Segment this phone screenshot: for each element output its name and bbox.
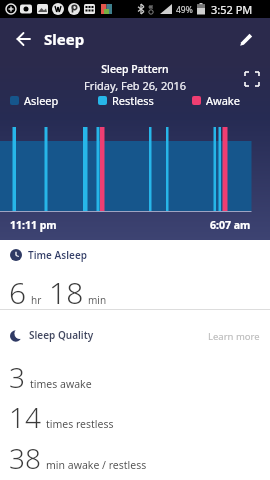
staticText: Restless — [112, 93, 154, 108]
staticText: times awake — [30, 377, 92, 391]
staticText: 18 — [49, 272, 84, 313]
staticText: 3:52 PM — [211, 2, 253, 17]
staticText: Awake — [206, 93, 240, 108]
staticText: Asleep — [24, 93, 59, 108]
staticText: Sleep Pattern — [0, 62, 270, 76]
staticText: 14 — [9, 398, 41, 436]
staticText: Sleep — [44, 29, 85, 49]
button[interactable]: Learn more — [208, 330, 260, 343]
staticText: 6:07 am — [210, 218, 251, 232]
staticText: 11:11 pm — [10, 218, 57, 232]
staticText: Sleep Quality — [29, 328, 94, 342]
staticText: times restless — [46, 417, 114, 431]
staticText: hr — [31, 293, 42, 307]
staticText: 49% — [176, 4, 193, 16]
staticText: min — [88, 293, 107, 307]
staticText: 6 — [9, 272, 27, 313]
button[interactable] — [8, 23, 40, 55]
staticText: 3 — [9, 358, 25, 396]
button[interactable]: Time Asleep — [10, 248, 88, 262]
button[interactable] — [230, 23, 262, 55]
staticText: Learn more — [208, 330, 260, 343]
staticText: Time Asleep — [28, 248, 88, 262]
button[interactable] — [240, 67, 264, 91]
button[interactable]: Asleep — [10, 93, 240, 108]
staticText: Friday, Feb 26, 2016 — [0, 78, 270, 93]
staticText: min awake / restless — [46, 458, 147, 472]
staticText: 38 — [9, 439, 41, 477]
